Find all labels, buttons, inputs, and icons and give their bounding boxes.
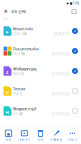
staticText: 최근 (3, 17, 9, 20)
staticText: 삭제 (37, 138, 43, 141)
staticText: 156 B (13, 92, 22, 96)
staticText: 저장 (5, 138, 11, 141)
button[interactable]: Close (2, 7, 9, 15)
button[interactable]: 삭제 (32, 129, 48, 142)
staticText: Text.txt (13, 86, 25, 91)
button[interactable]: Document.xlsx (0, 41, 81, 61)
button[interactable]: 저장 (0, 129, 16, 142)
staticText: 이름변경 (50, 138, 62, 141)
button[interactable]: 더보기 (64, 129, 80, 142)
staticText: ✓ (73, 68, 77, 74)
staticText: 2019/10/20 (51, 52, 69, 56)
staticText: Movie.mkv (13, 26, 33, 31)
staticText: ✕ (3, 8, 7, 15)
button[interactable]: 내보내기 (16, 129, 32, 142)
staticText: 2019/10/20 (51, 112, 69, 116)
button[interactable]: Layout options (70, 8, 77, 15)
staticText: 더보기 (68, 138, 77, 141)
staticText: 2019/10/20 (51, 72, 69, 76)
staticText: ✓ (73, 28, 77, 34)
staticText: 10.3 MB (13, 52, 25, 56)
staticText: 2019/10/20 (51, 92, 69, 96)
button[interactable]: Movie.mkv (0, 21, 81, 41)
staticText: 내보내기 (18, 138, 30, 141)
staticText: Wallpaper.jpg (13, 66, 36, 71)
button[interactable]: Wallpaper.jpg (0, 61, 81, 81)
staticText: Ringtone.mp3 (13, 106, 36, 111)
staticText: 10% (73, 2, 79, 5)
staticText: 4.3 MB (13, 112, 23, 116)
staticText: Document.xlsx (13, 46, 39, 51)
staticText: 980 KB (13, 72, 24, 76)
staticText: 2026/7/13 (53, 32, 69, 36)
button[interactable]: 이름변경 (48, 129, 64, 142)
staticText: 3개 선택 (11, 9, 26, 14)
staticText: ✓ (73, 48, 77, 54)
button[interactable]: Text.txt (0, 81, 81, 101)
button[interactable]: Ringtone.mp3 (0, 101, 81, 121)
staticText: 133.1 MB (13, 32, 27, 36)
